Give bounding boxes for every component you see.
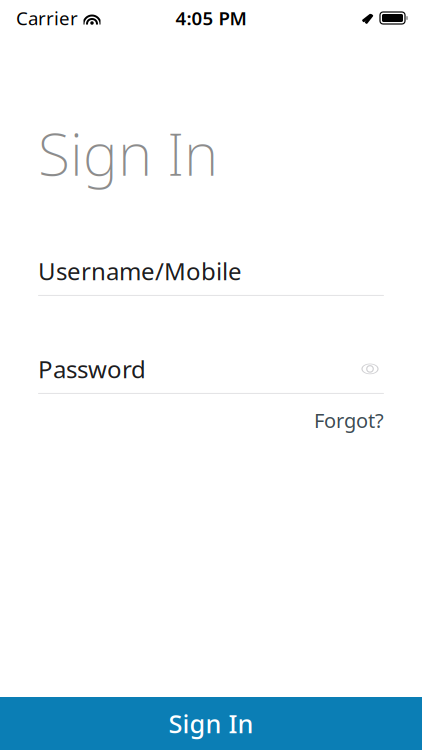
button[interactable]: Sign In — [0, 697, 422, 750]
staticText: Sign In — [168, 707, 253, 740]
staticText: Sign In — [38, 114, 218, 192]
button[interactable]: Forgot? — [314, 407, 384, 433]
staticText: 4:05 PM — [175, 6, 246, 30]
staticText: Forgot? — [314, 407, 384, 433]
staticText: Carrier — [16, 6, 78, 30]
staticText: Username/Mobile — [38, 255, 242, 287]
staticText: Password — [38, 353, 146, 385]
button[interactable]: Show password — [356, 356, 384, 382]
